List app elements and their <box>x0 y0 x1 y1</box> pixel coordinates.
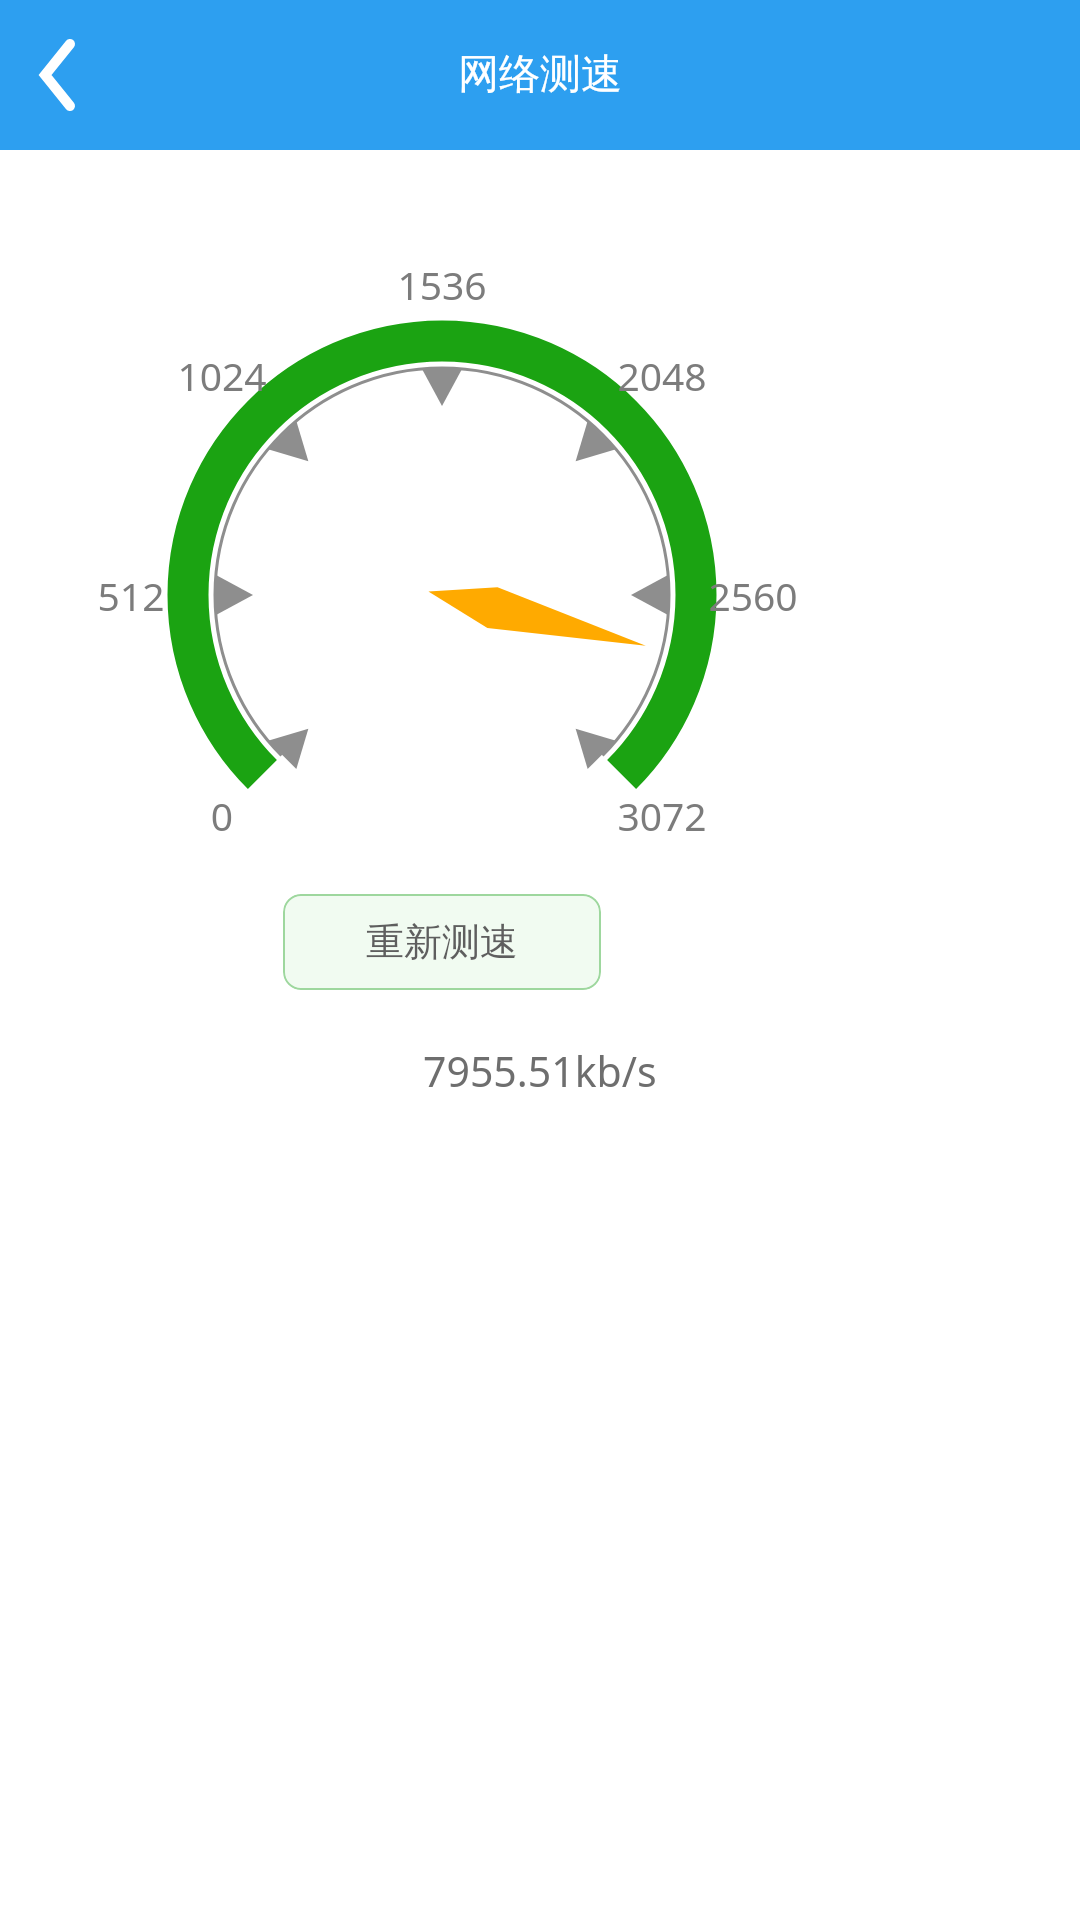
staticText: 512 <box>31 569 231 622</box>
staticText: 0 <box>122 789 322 842</box>
staticText: 1024 <box>122 349 322 402</box>
staticText: 1536 <box>342 258 542 311</box>
button[interactable]: Back <box>12 29 104 121</box>
staticText: 2560 <box>653 569 853 622</box>
staticText: 2048 <box>562 349 762 402</box>
staticText: 网络测速 <box>458 49 622 101</box>
staticText: 重新测速 <box>366 918 518 966</box>
staticText: 3072 <box>562 789 762 842</box>
button[interactable]: 重新测速 <box>283 894 601 990</box>
staticText: 7955.51kb/s <box>423 1043 657 1099</box>
